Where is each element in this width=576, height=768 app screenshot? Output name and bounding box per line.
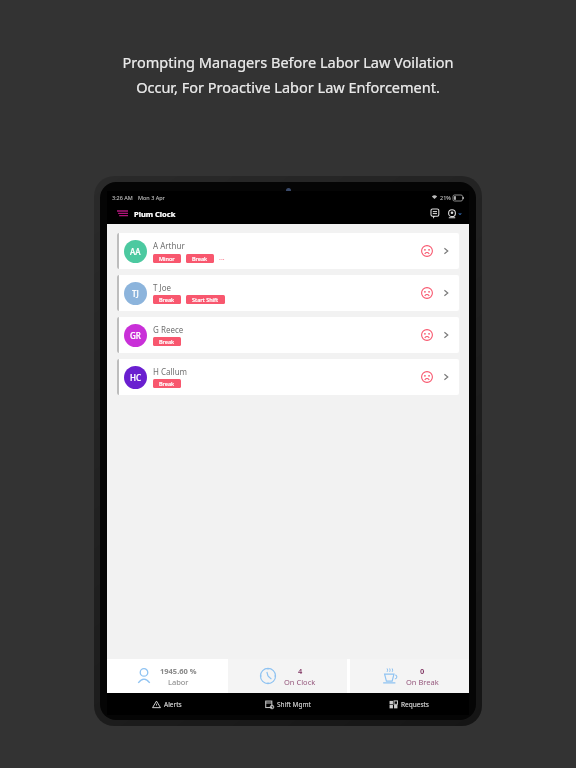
staticText: H Callum bbox=[153, 366, 188, 377]
staticText: GR bbox=[130, 330, 141, 341]
staticText: On Clock bbox=[284, 677, 316, 687]
staticText: Start Shift bbox=[192, 296, 219, 303]
staticText: AA bbox=[130, 246, 141, 257]
staticText: Requests bbox=[401, 700, 429, 709]
button[interactable]: Status bbox=[419, 285, 435, 301]
staticText: HC bbox=[130, 372, 142, 383]
button[interactable]: Minor bbox=[159, 254, 175, 263]
staticText: TJ bbox=[132, 288, 139, 299]
button[interactable]: 1945.60 % bbox=[107, 659, 225, 693]
button[interactable]: Status bbox=[419, 243, 435, 259]
button[interactable]: Account bbox=[447, 209, 462, 219]
button[interactable]: Break bbox=[159, 379, 175, 388]
button[interactable]: Break bbox=[192, 254, 208, 263]
button[interactable]: TJ bbox=[117, 275, 459, 311]
staticText: A Arthur bbox=[153, 240, 185, 251]
staticText: Minor bbox=[159, 255, 175, 262]
button[interactable]: Break bbox=[159, 337, 175, 346]
button[interactable]: Messages bbox=[428, 206, 444, 222]
button[interactable]: Shift Mgmt bbox=[227, 693, 348, 715]
button[interactable]: 4 bbox=[228, 659, 347, 693]
staticText: 4 bbox=[298, 666, 303, 676]
staticText: Alerts bbox=[164, 700, 182, 709]
staticText: 1945.60 % bbox=[160, 666, 197, 676]
staticText: Break bbox=[159, 338, 175, 345]
staticText: 0 bbox=[420, 666, 425, 676]
button[interactable]: Menu bbox=[114, 206, 130, 222]
button[interactable]: Requests bbox=[348, 693, 469, 715]
staticText: Plum Clock bbox=[134, 209, 176, 219]
button[interactable]: AA bbox=[117, 233, 459, 269]
staticText: On Break bbox=[406, 677, 439, 687]
staticText: Mon 3 Apr bbox=[138, 194, 165, 201]
button[interactable]: Status bbox=[419, 369, 435, 385]
staticText: 21% bbox=[440, 194, 451, 201]
staticText: T Joe bbox=[153, 282, 172, 293]
staticText: ... bbox=[219, 253, 225, 263]
button[interactable]: Start Shift bbox=[192, 295, 219, 304]
staticText: Occur, For Proactive Labor Law Enforceme… bbox=[136, 77, 440, 97]
button[interactable]: Open details bbox=[439, 328, 453, 342]
button[interactable]: 0 bbox=[350, 659, 469, 693]
button[interactable]: GR bbox=[117, 317, 459, 353]
staticText: Break bbox=[159, 296, 175, 303]
button[interactable]: Break bbox=[159, 295, 175, 304]
button[interactable]: Status bbox=[419, 327, 435, 343]
staticText: G Reece bbox=[153, 324, 184, 335]
button[interactable]: HC bbox=[117, 359, 459, 395]
staticText: Prompting Managers Before Labor Law Voil… bbox=[122, 52, 454, 72]
staticText: Break bbox=[192, 255, 208, 262]
staticText: Break bbox=[159, 380, 175, 387]
button[interactable]: Open details bbox=[439, 286, 453, 300]
button[interactable]: Open details bbox=[439, 244, 453, 258]
staticText: Labor bbox=[168, 677, 189, 687]
staticText: Shift Mgmt bbox=[277, 700, 311, 709]
button[interactable]: Alerts bbox=[107, 693, 227, 715]
button[interactable]: Open details bbox=[439, 370, 453, 384]
staticText: 3:26 AM bbox=[112, 194, 133, 201]
